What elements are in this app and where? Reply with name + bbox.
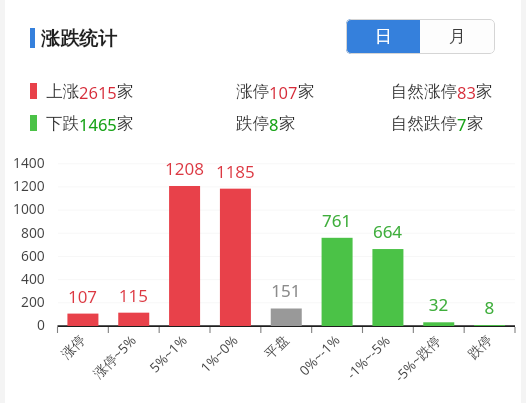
staticText: 日 [375, 26, 392, 47]
staticText: 107 [269, 81, 298, 103]
staticText: 家 [476, 81, 493, 102]
staticText: 家 [467, 113, 484, 134]
button[interactable]: 自然跌停 [391, 113, 484, 135]
staticText: 跌停 [236, 113, 269, 134]
staticText: 月 [449, 26, 466, 47]
staticText: 自然跌停 [391, 113, 457, 134]
staticText: 家 [298, 81, 315, 102]
staticText: 涨跌统计 [41, 27, 117, 51]
staticText: 下跌 [46, 113, 79, 134]
staticText: 家 [117, 81, 134, 102]
button[interactable]: 涨停 [236, 81, 315, 103]
staticText: 2615 [79, 81, 117, 103]
button[interactable]: 下跌 [46, 113, 134, 135]
staticText: 83 [457, 81, 476, 103]
staticText: 8 [269, 113, 279, 135]
staticText: 1465 [79, 113, 117, 135]
staticText: 家 [279, 113, 296, 134]
staticText: 家 [117, 113, 134, 134]
button[interactable]: 跌停 [236, 113, 296, 135]
button[interactable]: 日 [346, 19, 420, 54]
button[interactable]: 月 [420, 19, 495, 54]
staticText: 自然涨停 [391, 81, 457, 102]
staticText: 涨停 [236, 81, 269, 102]
button[interactable]: 涨跌统计 [41, 27, 117, 51]
button[interactable]: 自然涨停 [391, 81, 493, 103]
staticText: 7 [457, 113, 467, 135]
staticText: 上涨 [46, 81, 79, 102]
button[interactable]: 上涨 [46, 81, 134, 103]
